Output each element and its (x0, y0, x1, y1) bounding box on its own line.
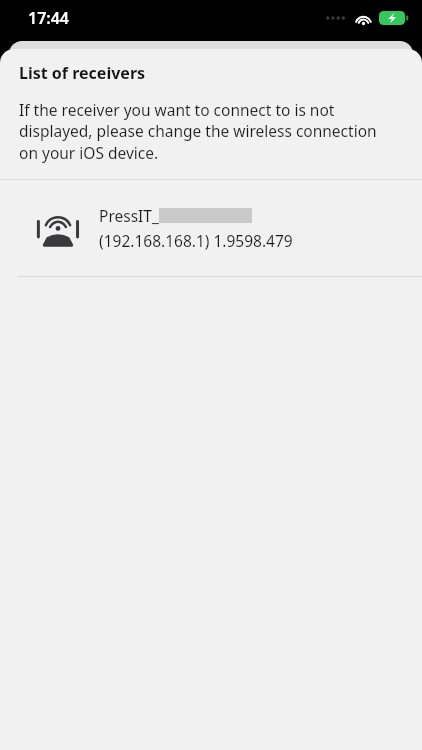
staticText: 17:44 (28, 7, 70, 29)
staticText: List of receivers (19, 62, 146, 84)
other: Wireless receiver (36, 208, 80, 248)
button[interactable]: Wireless receiver (0, 180, 422, 276)
staticText: PressIT_ (99, 205, 159, 226)
staticText: (192.168.168.1) 1.9598.479 (99, 230, 293, 251)
staticText: If the receiver you want to connect to i… (19, 99, 392, 163)
